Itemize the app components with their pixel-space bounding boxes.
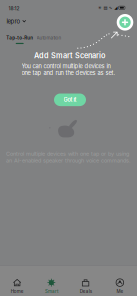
staticText: lepro	[7, 18, 21, 25]
staticText: Got it	[63, 96, 76, 103]
button[interactable]: Deals	[68, 279, 103, 294]
button[interactable]: Me	[103, 279, 137, 294]
staticText: Control multiple devices with one tap or…	[6, 150, 131, 164]
staticText: Automation	[37, 35, 62, 41]
staticText: ∿	[109, 5, 113, 10]
staticText: ▤	[103, 5, 107, 10]
staticText: Smart	[45, 288, 58, 294]
button[interactable]: Smart	[34, 279, 68, 294]
staticText: Home	[11, 288, 24, 294]
button[interactable]: Home	[0, 279, 34, 294]
staticText: 18:12	[9, 5, 20, 11]
staticText: Add Smart Scenario	[34, 51, 105, 60]
button[interactable]: lepro	[6, 16, 27, 27]
button[interactable]: Tap-to-Run	[6, 35, 33, 44]
staticText: ✳	[98, 5, 102, 10]
staticText: You can control multiple devices in one …	[21, 63, 115, 76]
staticText: Tap-to-Run	[6, 35, 33, 41]
staticText: Deals	[80, 288, 92, 294]
staticText: Me	[116, 288, 123, 294]
button[interactable]: Got it	[54, 93, 86, 106]
button[interactable]: Automation	[37, 35, 62, 41]
staticText: ◢	[114, 5, 117, 10]
